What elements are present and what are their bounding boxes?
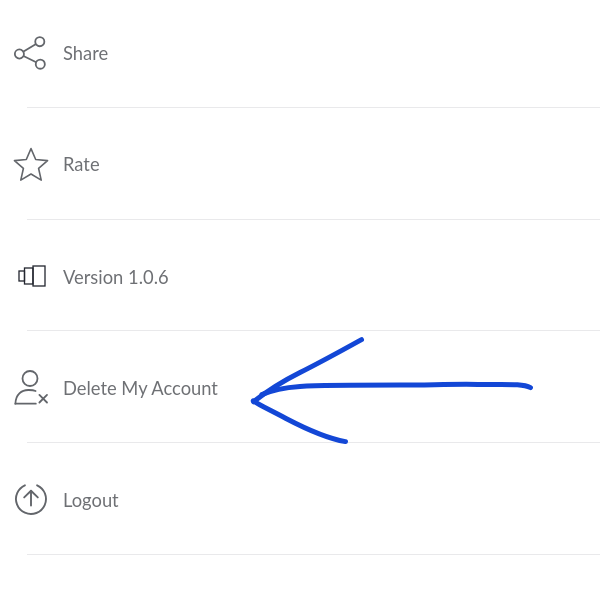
staticText: Rate xyxy=(63,153,100,175)
other: Version xyxy=(8,252,56,300)
other: Rate xyxy=(7,142,55,190)
other: Delete My Account xyxy=(7,363,55,411)
staticText: Share xyxy=(63,42,109,64)
button[interactable]: Rate xyxy=(0,108,600,219)
staticText: Version 1.0.6 xyxy=(63,266,169,288)
other: Logout xyxy=(7,475,55,523)
staticText: Delete My Account xyxy=(63,377,218,399)
button[interactable]: Logout xyxy=(0,443,600,554)
button[interactable]: Share xyxy=(0,0,600,107)
button[interactable]: Delete My Account xyxy=(0,331,600,442)
button[interactable]: Version xyxy=(0,220,600,331)
staticText: Logout xyxy=(63,489,119,511)
other: Share xyxy=(7,30,55,78)
